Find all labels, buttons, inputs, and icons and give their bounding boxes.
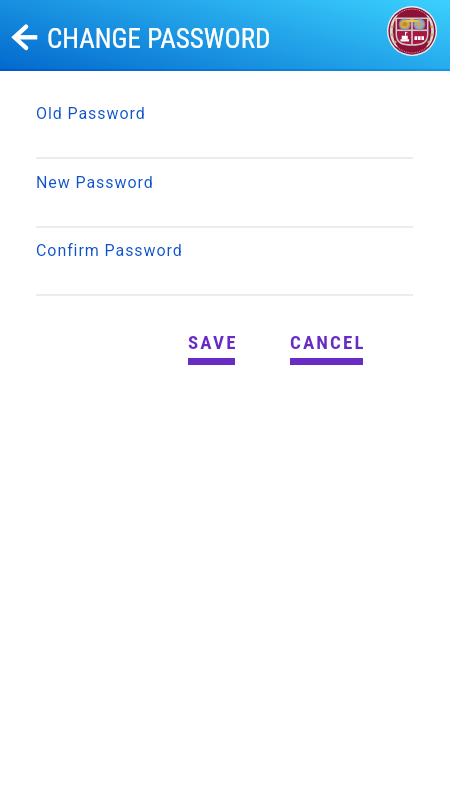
staticText: Confirm Password: [36, 241, 183, 260]
button[interactable]: New Password: [0, 167, 450, 229]
button[interactable]: CANCEL: [290, 326, 363, 370]
button[interactable]: Back: [4, 20, 40, 56]
staticText: New Password: [36, 173, 154, 192]
button[interactable]: SAVE: [188, 326, 235, 370]
staticText: CHANGE PASSWORD: [47, 23, 271, 55]
staticText: SAVE: [188, 331, 235, 353]
staticText: Old Password: [36, 104, 146, 123]
button[interactable]: Old Password: [0, 98, 450, 160]
staticText: CANCEL: [290, 331, 363, 353]
button[interactable]: Confirm Password: [0, 235, 450, 297]
other: School logo: [387, 6, 437, 56]
